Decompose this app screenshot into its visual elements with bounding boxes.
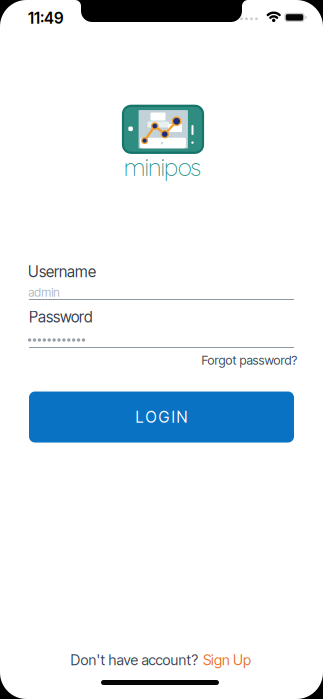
staticText: L O G I N [135, 408, 187, 426]
button[interactable]: Username [29, 261, 294, 301]
button[interactable]: Password [29, 309, 294, 349]
staticText: Forgot password? [201, 353, 297, 368]
staticText: minipos [124, 152, 201, 182]
staticText: Don't have account? [71, 651, 199, 669]
staticText: 11:49 [28, 9, 64, 27]
staticText: Sign Up [203, 651, 251, 669]
button[interactable]: LOGIN [29, 391, 294, 442]
staticText: Username [28, 262, 96, 281]
staticText: Password [29, 308, 93, 326]
button[interactable]: Forgot password? [201, 353, 297, 368]
button[interactable]: Sign Up [203, 651, 251, 669]
staticText: admin [28, 285, 59, 300]
